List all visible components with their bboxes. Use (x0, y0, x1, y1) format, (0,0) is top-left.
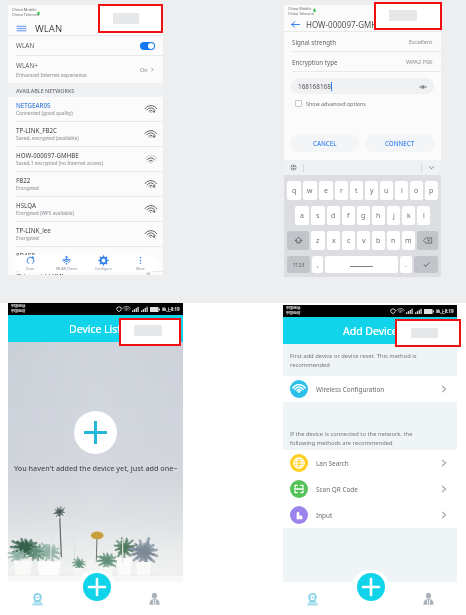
button[interactable]: key (287, 231, 309, 250)
button[interactable]: Wireless Configuration (283, 376, 457, 402)
button[interactable]: n (387, 231, 400, 250)
staticText: u (384, 186, 389, 196)
button[interactable]: l (417, 206, 430, 225)
button[interactable]: Encryption type (284, 52, 441, 71)
button[interactable]: k (402, 206, 415, 225)
button[interactable]: ?123 (287, 256, 310, 273)
staticText: z (316, 236, 320, 246)
button[interactable]: m (402, 231, 415, 250)
button[interactable]: f (342, 206, 355, 225)
button[interactable]: 168168168 (291, 78, 434, 94)
button[interactable]: h (372, 206, 385, 225)
button[interactable] (325, 256, 398, 273)
staticText: x (332, 236, 336, 246)
button[interactable]: Add device (74, 411, 117, 454)
button[interactable]: b (372, 231, 385, 250)
button[interactable]: TP-LINK_FB2C (8, 122, 163, 146)
staticText: First add device or device reset. This m… (290, 352, 444, 369)
button[interactable]: a (295, 206, 309, 225)
button[interactable]: key (414, 256, 438, 273)
button[interactable]: Back (290, 19, 301, 30)
staticText: Encryption type (292, 58, 338, 66)
button[interactable]: s (311, 206, 325, 225)
staticText: HSLQA (16, 201, 36, 209)
button[interactable]: r (335, 181, 348, 200)
button[interactable]: Hide keyboard (428, 164, 435, 171)
button[interactable]: Scan QR Code (283, 476, 457, 502)
staticText: HOW-000097-GMHBE (16, 151, 79, 159)
button[interactable]: d (327, 206, 340, 225)
button[interactable]: z (311, 231, 325, 250)
button[interactable]: p (425, 181, 438, 200)
button[interactable]: Language (290, 164, 297, 171)
staticText: e (324, 186, 328, 196)
button[interactable]: Profile (399, 582, 457, 615)
button[interactable]: WLAN Direct (48, 255, 85, 272)
button[interactable]: x (327, 231, 340, 250)
button[interactable]: Add (83, 573, 111, 601)
staticText: Encrypted (16, 260, 39, 267)
button[interactable]: Devices (8, 582, 67, 615)
button[interactable]: WLAN+ (8, 56, 163, 83)
staticText: j (393, 211, 395, 221)
staticText: China Telecom (288, 11, 314, 16)
button[interactable]: q (287, 181, 301, 200)
button[interactable]: CANCEL (290, 134, 359, 152)
button[interactable]: HSLQA (8, 197, 163, 221)
button[interactable]: t (350, 181, 363, 200)
button[interactable]: Scan (12, 255, 48, 272)
button[interactable]: e (319, 181, 333, 200)
button[interactable]: key (417, 231, 438, 250)
button[interactable]: HOW-000097-GMHBE (8, 147, 163, 171)
staticText: t (355, 186, 358, 196)
button[interactable]: Input (283, 502, 457, 528)
button[interactable]: j (387, 206, 400, 225)
staticText: 中国移动 (11, 304, 26, 309)
button[interactable]: w (303, 181, 317, 200)
button[interactable]: y (365, 181, 378, 200)
staticText: 晚上8:19 (436, 308, 454, 314)
button[interactable]: TP-LINK_lee (8, 222, 163, 246)
button[interactable]: Menu (16, 23, 27, 34)
staticText: k (407, 211, 411, 221)
staticText: Connected (good quality) (16, 110, 73, 117)
staticText: i (401, 186, 403, 196)
button[interactable]: Show advanced options (295, 97, 366, 109)
button[interactable]: More (122, 255, 159, 272)
button[interactable]: Profile (125, 582, 183, 615)
button[interactable]: Lan Search (283, 450, 457, 476)
staticText: WPA2 PSK (406, 58, 433, 66)
staticText: 晚上8:19 (162, 306, 180, 312)
button[interactable]: c (342, 231, 355, 250)
staticText: Encrypted (16, 185, 39, 192)
button[interactable]: CONNECT (365, 134, 435, 152)
button[interactable]: i (395, 181, 408, 200)
button[interactable]: u (380, 181, 393, 200)
button[interactable]: FB22 (8, 172, 163, 196)
button[interactable]: , (312, 256, 323, 273)
staticText: c (347, 236, 351, 246)
staticText: Scan (26, 266, 34, 271)
button[interactable]: 8D4C8 (8, 247, 163, 271)
button[interactable]: Signal strength (284, 32, 441, 51)
button[interactable]: Devices (283, 582, 341, 615)
button[interactable]: Configure (85, 255, 122, 272)
button[interactable]: o (410, 181, 423, 200)
staticText: On (140, 66, 148, 73)
staticText: WLAN (35, 22, 63, 35)
button[interactable]: Add (357, 573, 385, 601)
staticText: 中国移动 (286, 306, 301, 311)
button[interactable]: NETGEAR05 (8, 97, 163, 121)
staticText: China Mobile (288, 6, 312, 11)
staticText: Chinanet-hhYMk (16, 272, 66, 275)
staticText: h (376, 211, 381, 221)
staticText: China Telecom (12, 12, 40, 17)
staticText: CANCEL (313, 139, 337, 147)
button[interactable]: . (400, 256, 412, 273)
button[interactable]: WLAN (8, 36, 163, 55)
button[interactable]: g (357, 206, 370, 225)
button[interactable]: Chinanet-hhYMk (8, 272, 163, 275)
staticText: Configure (95, 266, 112, 271)
staticText: w (307, 186, 313, 196)
button[interactable]: v (357, 231, 370, 250)
